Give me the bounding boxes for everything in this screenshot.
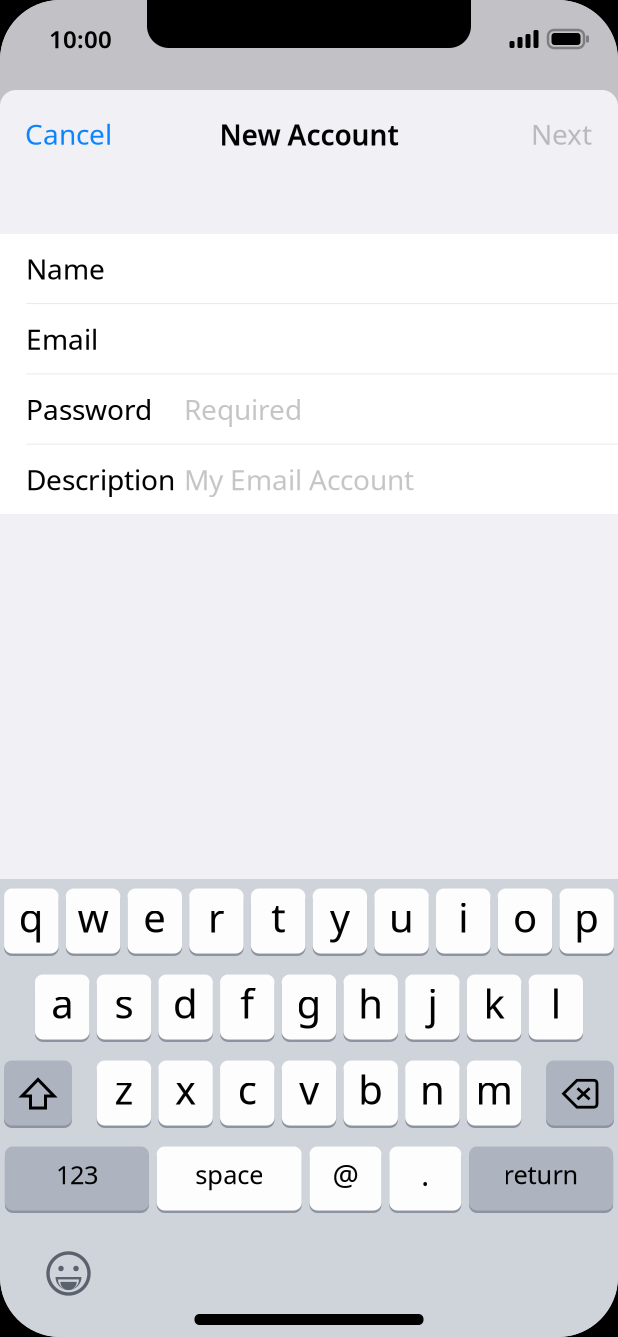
staticText: New Account: [219, 116, 398, 153]
staticText: @: [332, 1155, 358, 1194]
staticText: a: [51, 976, 73, 1029]
button[interactable]: Password: [0, 374, 618, 444]
staticText: i: [458, 890, 468, 943]
staticText: y: [330, 890, 350, 943]
button[interactable]: Next: [505, 105, 618, 163]
button[interactable]: n: [405, 1058, 460, 1128]
staticText: h: [358, 976, 383, 1029]
staticText: Password: [26, 390, 152, 428]
button[interactable]: .: [389, 1144, 461, 1213]
staticText: Next: [531, 115, 592, 153]
staticText: t: [271, 890, 285, 943]
staticText: z: [114, 1062, 133, 1115]
staticText: k: [484, 976, 505, 1029]
button[interactable]: space: [157, 1144, 302, 1213]
button[interactable]: w: [66, 886, 120, 956]
button[interactable]: Emoji keyboard: [0, 1227, 91, 1296]
staticText: s: [114, 976, 133, 1029]
staticText: 123: [56, 1158, 98, 1191]
button[interactable]: Delete: [546, 1058, 614, 1128]
staticText: r: [208, 890, 225, 943]
staticText: q: [19, 890, 44, 943]
staticText: v: [299, 1062, 319, 1115]
staticText: p: [574, 890, 599, 943]
button[interactable]: e: [127, 886, 182, 956]
button[interactable]: return: [469, 1144, 613, 1213]
staticText: Email: [26, 320, 98, 357]
button[interactable]: y: [313, 886, 367, 956]
button[interactable]: m: [467, 1058, 521, 1128]
staticText: f: [240, 976, 254, 1029]
button[interactable]: g: [282, 972, 336, 1042]
button[interactable]: f: [220, 972, 275, 1042]
button[interactable]: u: [374, 886, 429, 956]
staticText: Description: [26, 461, 175, 498]
button[interactable]: Email: [0, 304, 618, 373]
button[interactable]: i: [436, 886, 490, 956]
button[interactable]: q: [4, 886, 59, 956]
button[interactable]: d: [158, 972, 213, 1042]
staticText: c: [238, 1062, 257, 1115]
staticText: j: [427, 976, 437, 1029]
button[interactable]: b: [343, 1058, 398, 1128]
button[interactable]: x: [158, 1058, 213, 1128]
staticText: x: [175, 1062, 196, 1115]
button[interactable]: c: [220, 1058, 274, 1128]
button[interactable]: o: [498, 886, 552, 956]
button[interactable]: v: [282, 1058, 336, 1128]
staticText: b: [358, 1062, 383, 1115]
button[interactable]: Cancel: [0, 105, 137, 163]
staticText: u: [389, 890, 414, 943]
staticText: e: [143, 890, 166, 943]
staticText: .: [421, 1155, 429, 1194]
button[interactable]: l: [528, 972, 583, 1042]
staticText: l: [551, 976, 561, 1029]
button[interactable]: z: [97, 1058, 151, 1128]
button[interactable]: j: [405, 972, 460, 1042]
staticText: Name: [26, 250, 105, 287]
staticText: n: [420, 1062, 445, 1115]
staticText: Required: [184, 390, 302, 428]
button[interactable]: @: [309, 1144, 381, 1213]
button[interactable]: k: [467, 972, 521, 1042]
staticText: o: [513, 890, 537, 943]
staticText: d: [173, 976, 198, 1029]
staticText: My Email Account: [184, 461, 414, 498]
button[interactable]: t: [251, 886, 305, 956]
button[interactable]: p: [559, 886, 614, 956]
button[interactable]: s: [97, 972, 151, 1042]
button[interactable]: h: [343, 972, 398, 1042]
staticText: Cancel: [25, 115, 112, 153]
button[interactable]: 123: [5, 1144, 149, 1213]
button[interactable]: r: [189, 886, 244, 956]
staticText: m: [476, 1062, 513, 1115]
staticText: space: [195, 1158, 263, 1191]
staticText: w: [78, 890, 109, 943]
button[interactable]: Name: [0, 234, 618, 303]
staticText: 10:00: [49, 23, 112, 55]
button[interactable]: a: [35, 972, 89, 1042]
button[interactable]: Shift: [4, 1058, 72, 1128]
button[interactable]: Description: [0, 445, 618, 514]
staticText: g: [296, 976, 321, 1029]
staticText: return: [504, 1158, 579, 1191]
